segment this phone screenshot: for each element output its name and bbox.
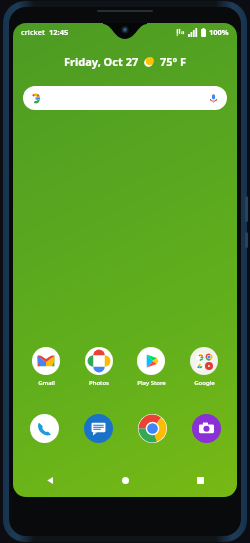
staticText: 12:45 bbox=[49, 27, 69, 37]
staticText: Google bbox=[194, 379, 215, 387]
button[interactable]: Camera bbox=[191, 413, 221, 443]
button[interactable]: Recents bbox=[189, 469, 211, 491]
button[interactable]: Photos bbox=[76, 347, 122, 387]
button[interactable]: Back bbox=[39, 469, 61, 491]
staticText: 100% bbox=[209, 27, 229, 37]
staticText: Photos bbox=[89, 379, 109, 387]
button[interactable]: Gmail bbox=[23, 347, 69, 387]
button[interactable]: Chrome bbox=[137, 413, 167, 443]
staticText: Play Store bbox=[137, 379, 166, 387]
staticText: Friday, Oct 27 bbox=[64, 54, 139, 69]
staticText: 75° F bbox=[160, 54, 187, 69]
staticText: cricket bbox=[21, 27, 45, 37]
button[interactable]: Play Store bbox=[128, 347, 174, 387]
button[interactable]: Friday, Oct 27 bbox=[13, 54, 237, 69]
button[interactable]: Home bbox=[114, 469, 136, 491]
button[interactable]: Google bbox=[181, 347, 227, 387]
button[interactable]: Messages bbox=[83, 413, 113, 443]
button[interactable]: Search bbox=[23, 86, 227, 110]
button[interactable]: Phone bbox=[29, 413, 59, 443]
staticText: Gmail bbox=[38, 379, 55, 387]
